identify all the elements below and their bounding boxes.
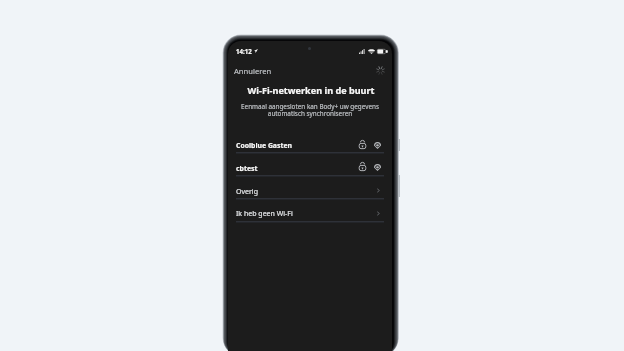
button[interactable]: [228, 198, 392, 221]
staticText: Coolblue Gasten: [236, 141, 293, 150]
button[interactable]: [228, 175, 392, 198]
staticText: 14:12: [236, 47, 252, 55]
staticText: Ik heb geen Wi-Fi: [236, 209, 293, 219]
staticText: Eenmaal aangesloten kan Body+ uw gegeven…: [228, 102, 392, 118]
staticText: Overig: [236, 187, 258, 197]
button[interactable]: [228, 152, 392, 175]
staticText: Annuleren: [234, 66, 272, 76]
staticText: Wi-Fi-netwerken in de buurt: [229, 84, 392, 96]
staticText: cbtest: [236, 164, 258, 173]
button[interactable]: Loading: [375, 65, 386, 76]
button[interactable]: [228, 130, 392, 152]
button[interactable]: Annuleren: [231, 63, 276, 77]
